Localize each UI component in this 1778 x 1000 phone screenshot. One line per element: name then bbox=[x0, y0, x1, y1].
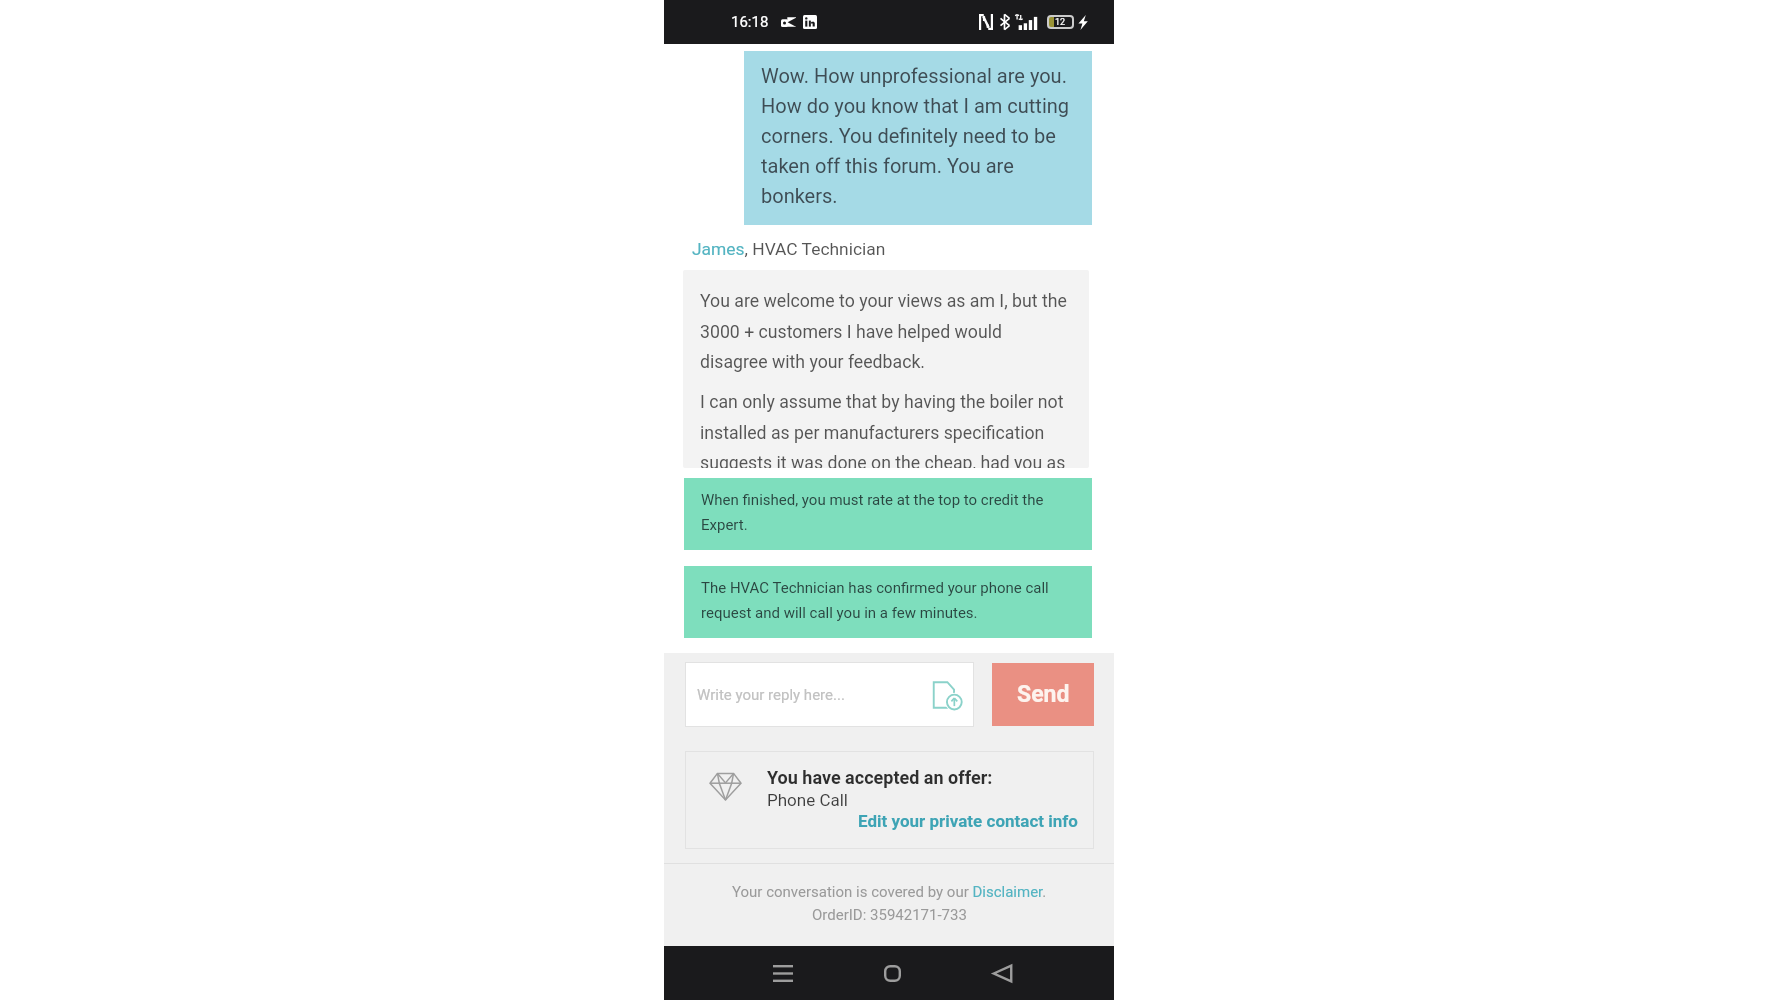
staticText: OrderID: 35942171-733 bbox=[812, 906, 967, 924]
button[interactable]: Send bbox=[992, 663, 1094, 726]
staticText: You are welcome to your views as am I, b… bbox=[700, 291, 1067, 372]
button[interactable]: When finished, you must rate at the top … bbox=[684, 478, 1092, 550]
button[interactable]: Back bbox=[947, 946, 1057, 1000]
button[interactable]: Wow. How unprofessional are you. How do … bbox=[744, 51, 1092, 225]
staticText: I can only assume that by having the boi… bbox=[700, 392, 1066, 468]
staticText: You have accepted an offer: bbox=[767, 767, 993, 788]
staticText: Phone Call bbox=[767, 790, 848, 810]
staticText: James, HVAC Technician bbox=[692, 239, 886, 259]
staticText: Write your reply here... bbox=[697, 686, 845, 704]
button[interactable]: James, HVAC Technician bbox=[692, 239, 886, 259]
staticText: 16:18 bbox=[731, 13, 769, 31]
button[interactable]: Write your reply here... bbox=[685, 662, 974, 727]
button[interactable]: You have accepted an offer: bbox=[685, 751, 1094, 849]
button[interactable]: You are welcome to your views as am I, b… bbox=[683, 270, 1089, 468]
staticText: The HVAC Technician has confirmed your p… bbox=[701, 579, 1049, 621]
button[interactable]: Edit your private contact info bbox=[858, 811, 1078, 831]
button[interactable]: Your conversation is covered by our Disc… bbox=[732, 883, 1047, 901]
button[interactable]: Home bbox=[837, 946, 947, 1000]
staticText: Send bbox=[1017, 681, 1070, 708]
button[interactable]: The HVAC Technician has confirmed your p… bbox=[684, 566, 1092, 638]
staticText: 12 bbox=[1055, 17, 1066, 28]
button[interactable]: Recent apps bbox=[728, 946, 837, 1000]
staticText: When finished, you must rate at the top … bbox=[701, 491, 1044, 533]
button[interactable]: Attach file bbox=[932, 679, 961, 711]
staticText: Wow. How unprofessional are you. How do … bbox=[761, 64, 1070, 208]
